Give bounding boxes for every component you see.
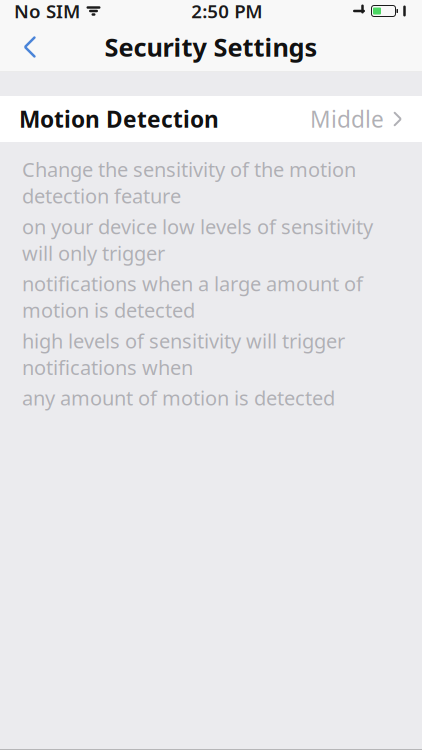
staticText: on your device low levels of sensitivity… — [22, 213, 373, 266]
staticText: No SIM — [14, 0, 80, 23]
staticText: Change the sensitivity of the motion det… — [22, 156, 356, 209]
staticText: high levels of sensitivity will trigger … — [22, 327, 345, 380]
staticText: notifications when a large amount of mot… — [22, 270, 363, 323]
staticText: any amount of motion is detected — [22, 384, 335, 411]
staticText: 2:50 PM — [191, 0, 262, 23]
staticText: Middle — [310, 104, 384, 134]
button[interactable]: Back — [8, 25, 52, 69]
staticText: Security Settings — [104, 30, 317, 64]
button[interactable]: Motion Detection — [0, 96, 422, 142]
staticText: Motion Detection — [19, 104, 219, 134]
